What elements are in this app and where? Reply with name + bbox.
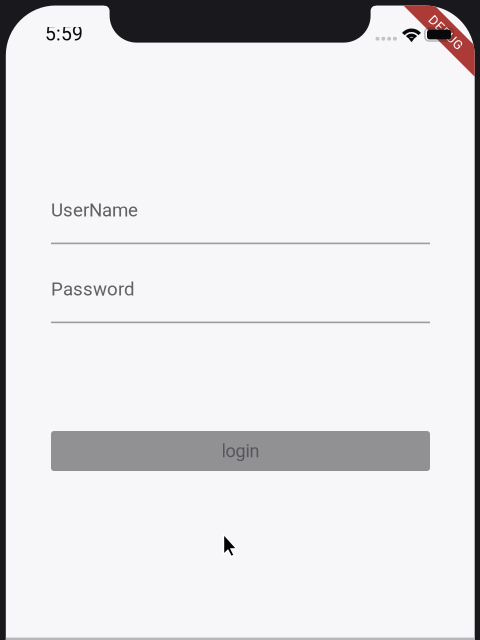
staticText: DEBUG: [424, 25, 467, 40]
button[interactable]: UserName: [51, 197, 430, 244]
staticText: UserName: [51, 199, 138, 221]
staticText: Password: [51, 278, 135, 300]
button[interactable]: Password: [51, 276, 430, 323]
button[interactable]: login: [51, 431, 430, 471]
staticText: 5:59: [45, 23, 83, 45]
staticText: login: [221, 440, 259, 462]
